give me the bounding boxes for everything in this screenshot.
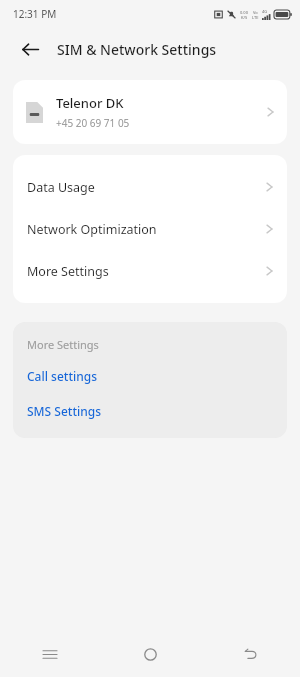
staticText: Vo bbox=[253, 10, 258, 15]
staticText: Telenor DK bbox=[56, 94, 124, 112]
button[interactable]: SMS Settings bbox=[13, 400, 287, 422]
staticText: 4G bbox=[262, 9, 268, 14]
staticText: 0.00 bbox=[240, 10, 248, 15]
staticText: 12:31 PM bbox=[13, 7, 57, 21]
staticText: LTE bbox=[252, 15, 259, 20]
button[interactable]: Network Optimization bbox=[13, 208, 287, 250]
button[interactable]: Recent apps bbox=[0, 631, 100, 677]
staticText: Data Usage bbox=[27, 179, 266, 196]
button[interactable]: Call settings bbox=[13, 365, 287, 387]
staticText: Network Optimization bbox=[27, 221, 266, 238]
staticText: SMS Settings bbox=[27, 403, 102, 419]
staticText: Call settings bbox=[27, 368, 98, 384]
staticText: SIM & Network Settings bbox=[57, 40, 217, 59]
button[interactable]: Data Usage bbox=[13, 166, 287, 208]
button[interactable]: Telenor DK bbox=[13, 80, 287, 144]
staticText: More Settings bbox=[27, 337, 99, 352]
staticText: +45 20 69 71 05 bbox=[56, 116, 130, 130]
button[interactable]: Home bbox=[100, 631, 200, 677]
button[interactable]: Back bbox=[200, 631, 300, 677]
staticText: More Settings bbox=[27, 263, 266, 280]
button[interactable]: Back bbox=[14, 33, 46, 65]
button[interactable]: More Settings bbox=[13, 250, 287, 292]
staticText: K/S bbox=[241, 15, 248, 20]
